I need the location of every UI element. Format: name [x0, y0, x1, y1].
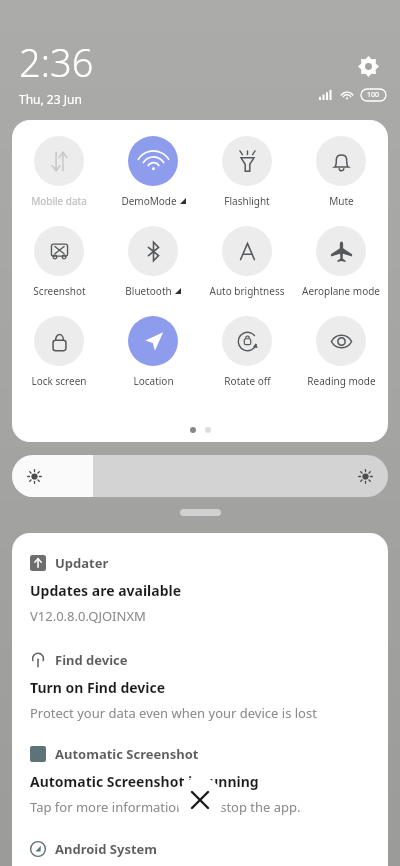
button[interactable]: Aeroplane mode: [294, 226, 388, 298]
button[interactable]: Screenshot: [12, 226, 106, 298]
staticText: V12.0.8.0.QJOINXM: [30, 607, 146, 625]
button[interactable]: Close: [177, 777, 223, 823]
staticText: Tap for more information or to stop the …: [30, 798, 301, 816]
staticText: Bluetooth: [125, 284, 172, 298]
staticText: Automatic Screenshot: [55, 745, 199, 763]
button[interactable]: Find device: [30, 651, 370, 722]
staticText: Screenshot: [33, 284, 86, 298]
button[interactable]: Auto brightness: [200, 226, 294, 298]
staticText: Updates are available: [30, 581, 182, 600]
button[interactable]: Bluetooth: [106, 226, 200, 298]
staticText: Android System: [55, 840, 158, 858]
staticText: 2:36: [19, 36, 94, 88]
button[interactable]: Updater: [30, 554, 370, 625]
button[interactable]: Mobile data: [12, 136, 106, 208]
staticText: 100: [367, 90, 380, 100]
button[interactable]: Mute: [294, 136, 388, 208]
button[interactable]: Lock screen: [12, 316, 106, 388]
staticText: Turn on Find device: [30, 678, 166, 697]
button[interactable]: Reading mode: [294, 316, 388, 388]
staticText: Mobile data: [31, 194, 87, 208]
button[interactable]: Flashlight: [200, 136, 294, 208]
staticText: Automatic Screenshot is running: [30, 772, 259, 791]
staticText: Location: [133, 374, 174, 388]
staticText: Reading mode: [307, 374, 376, 388]
button[interactable]: Rotate off: [200, 316, 294, 388]
staticText: Mute: [329, 194, 354, 208]
staticText: Updater: [55, 554, 109, 572]
staticText: Rotate off: [224, 374, 271, 388]
staticText: Find device: [55, 651, 128, 669]
staticText: Aeroplane mode: [302, 284, 380, 298]
button[interactable]: DemoMode: [106, 136, 200, 208]
staticText: Lock screen: [31, 374, 87, 388]
button[interactable]: Android System: [30, 840, 370, 858]
button[interactable]: Location: [106, 316, 200, 388]
staticText: Protect your data even when your device …: [30, 704, 317, 722]
staticText: Auto brightness: [209, 284, 285, 298]
staticText: DemoMode: [121, 194, 177, 208]
staticText: Thu, 23 Jun: [19, 91, 82, 107]
staticText: Flashlight: [224, 194, 270, 208]
button[interactable]: Brightness: [12, 455, 388, 497]
button[interactable]: Automatic Screenshot: [30, 745, 370, 816]
button[interactable]: Settings: [348, 46, 388, 86]
